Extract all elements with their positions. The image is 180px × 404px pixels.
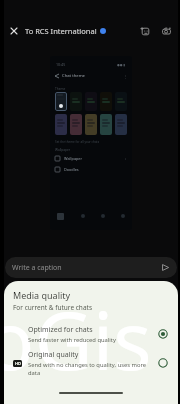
button[interactable]: HD: [4, 348, 178, 378]
staticText: Original quality: [28, 350, 79, 360]
button[interactable]: Write a caption: [5, 257, 177, 278]
staticText: Send faster with reduced quality: [28, 336, 116, 344]
staticText: For current & future chats: [13, 303, 92, 312]
staticText: Media quality: [13, 289, 71, 301]
staticText: Send with no changes to quality, uses mo…: [28, 361, 154, 377]
staticText: Theme: [55, 87, 66, 91]
staticText: To RCS International: [25, 26, 97, 36]
button[interactable]: Add photo: [136, 22, 154, 40]
button[interactable]: Optimized for chats: [4, 319, 178, 349]
staticText: ›: [125, 156, 127, 161]
staticText: oGism: [4, 284, 160, 393]
staticText: Set the theme for all your chats: [55, 140, 100, 144]
staticText: Write a caption: [12, 263, 62, 273]
staticText: Wallpaper: [55, 148, 71, 152]
staticText: ●● ▮: [117, 63, 126, 67]
staticText: Chat theme: [62, 73, 85, 79]
staticText: 10:45: [56, 62, 66, 67]
button[interactable]: Camera: [157, 22, 175, 40]
staticText: Optimized for chats: [28, 325, 93, 335]
staticText: HD: [15, 361, 21, 366]
staticText: ⋮: [123, 74, 127, 79]
staticText: Wallpaper: [64, 156, 83, 161]
staticText: Doodles: [64, 167, 79, 172]
button[interactable]: Close: [4, 21, 24, 41]
